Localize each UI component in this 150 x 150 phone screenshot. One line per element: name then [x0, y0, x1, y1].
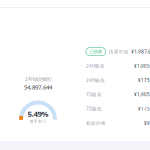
staticText: 5.49% — [27, 108, 48, 119]
staticText: $9.85 — [144, 120, 150, 126]
staticText: 24H成交额(¥) — [25, 76, 51, 82]
staticText: 54,897,644 — [24, 83, 52, 91]
staticText: 已收藏 — [90, 49, 102, 54]
staticText: 初始价格 — [86, 120, 106, 126]
button[interactable]: 24H最低 — [86, 73, 150, 87]
button[interactable]: 7D最高 — [86, 87, 150, 102]
staticText: 7D最高 — [86, 91, 102, 98]
button[interactable]: 已收藏 — [86, 48, 106, 56]
staticText: 流通市值 — [109, 49, 129, 54]
staticText: ¥1,905.28 — [134, 63, 150, 69]
staticText: ¥1,987,654 — [131, 49, 150, 55]
button[interactable]: 7D最低 — [86, 102, 150, 116]
button[interactable]: 初始价格 — [86, 116, 150, 130]
staticText: 24H最低 — [86, 77, 105, 83]
staticText: 换手率ⓘ — [30, 119, 46, 124]
staticText: ¥175.30 — [138, 106, 150, 112]
staticText: 7D最低 — [86, 106, 102, 112]
staticText: ¥175.30 — [138, 77, 150, 83]
staticText: 24H最高 — [86, 63, 105, 69]
button[interactable]: 24H最高 — [86, 59, 150, 73]
staticText: ¥1,905.28 — [134, 91, 150, 98]
